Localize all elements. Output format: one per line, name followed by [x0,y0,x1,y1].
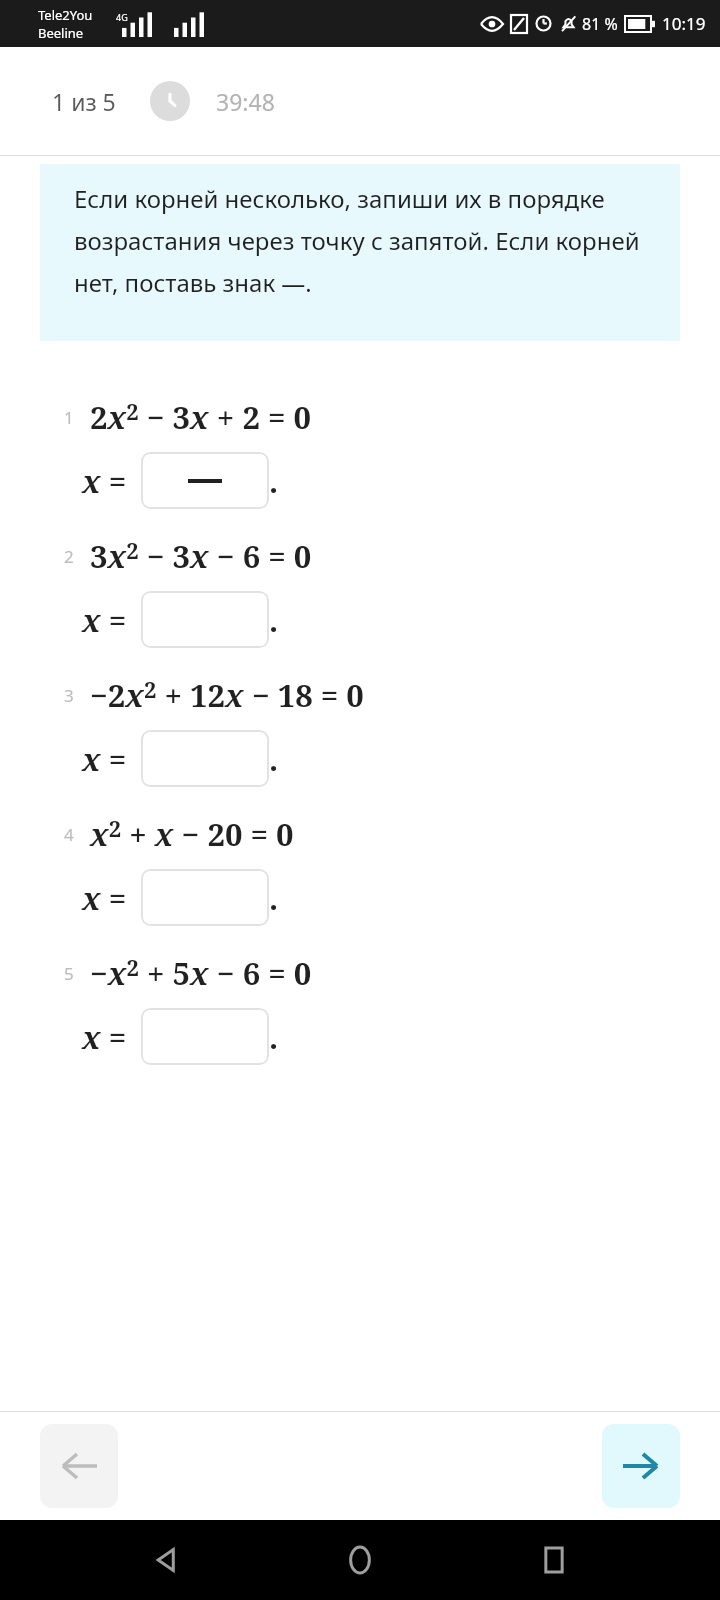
staticText: −2x2 + 12x − 18 = 0 [90,674,364,716]
staticText: 3x2 − 3x − 6 = 0 [90,535,312,577]
staticText: 3 [64,684,74,707]
button[interactable] [141,591,269,648]
staticText: Tele2You [38,6,93,24]
button[interactable]: Recents [526,1532,582,1588]
button[interactable]: Назад [40,1424,118,1508]
staticText: 1 из 5 [52,86,116,117]
staticText: 4 [64,823,74,846]
button[interactable]: Home [332,1532,388,1588]
staticText: 81 % [582,13,618,35]
staticText: 1 [64,406,74,429]
staticText: x = [82,1016,127,1058]
staticText: 39:48 [216,86,275,117]
button[interactable] [141,1008,269,1065]
button[interactable] [141,869,269,926]
staticText: . [269,877,279,919]
staticText: 10:19 [662,12,706,35]
button[interactable] [141,730,269,787]
staticText: −x2 + 5x − 6 = 0 [90,952,312,994]
staticText: 2x2 − 3x + 2 = 0 [90,396,312,438]
staticText: . [269,460,279,502]
staticText: 2 [64,545,74,568]
staticText: x = [82,738,127,780]
staticText: x = [82,877,127,919]
button[interactable] [141,452,269,509]
staticText: 4G [116,11,128,23]
button[interactable]: Back [138,1532,194,1588]
staticText: x = [82,460,127,502]
staticText: Если корней несколько, запиши их в поряд… [74,182,656,299]
staticText: . [269,599,279,641]
staticText: 5 [64,962,74,985]
staticText: x = [82,599,127,641]
button[interactable]: Вперёд [602,1424,680,1508]
staticText: x2 + x − 20 = 0 [90,813,294,855]
staticText: . [269,738,279,780]
staticText: . [269,1016,279,1058]
staticText: Beeline [38,24,84,42]
